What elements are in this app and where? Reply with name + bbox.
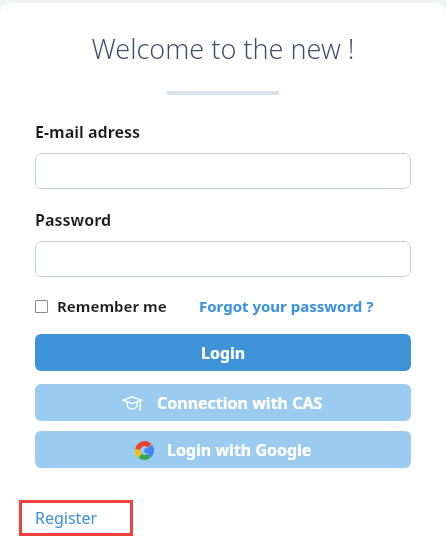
staticText: Register [35,507,98,529]
staticText: Forgot your password ? [199,296,374,316]
staticText: Password [35,209,112,231]
button[interactable] [35,153,411,189]
other: Google [135,441,154,460]
other: Graduation cap [123,393,143,413]
button[interactable]: Graduation cap [35,384,411,421]
button[interactable]: Login [35,334,411,371]
button[interactable] [35,241,411,277]
staticText: Login [201,342,246,364]
staticText: E-mail adress [35,121,141,143]
staticText: Welcome to the new ! [0,30,446,67]
staticText: Login with Google [167,439,312,461]
staticText: Remember me [57,296,167,316]
button[interactable]: Forgot your password ? [199,296,374,316]
button[interactable]: Register [35,503,98,533]
button[interactable]: Remember me [35,296,167,316]
staticText: Connection with CAS [157,392,323,414]
button[interactable]: Google [35,431,411,468]
